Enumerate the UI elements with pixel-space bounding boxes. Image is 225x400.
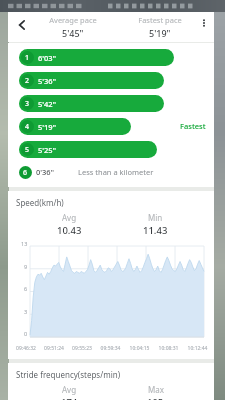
staticText: 09:46:32 bbox=[12, 345, 40, 352]
staticText: 0'36" bbox=[36, 167, 54, 177]
staticText: 6 bbox=[23, 168, 28, 178]
staticText: 6'03" bbox=[38, 53, 56, 63]
staticText: 5'45" bbox=[62, 27, 84, 39]
staticText: 5'36" bbox=[38, 76, 56, 86]
staticText: 4 bbox=[25, 122, 30, 132]
staticText: 6 bbox=[24, 285, 28, 292]
button[interactable]: 2 bbox=[8, 71, 214, 89]
staticText: Max bbox=[148, 384, 164, 395]
staticText: 9 bbox=[24, 263, 28, 270]
staticText: Min bbox=[148, 212, 163, 223]
button[interactable]: Average pace bbox=[30, 15, 116, 39]
staticText: 5'19" bbox=[149, 27, 171, 39]
staticText: 3 bbox=[24, 308, 28, 315]
staticText: 09:51:24 bbox=[40, 345, 68, 352]
staticText: Less than a kilometer bbox=[78, 167, 154, 177]
staticText: Fastest bbox=[180, 121, 206, 131]
staticText: 5'19" bbox=[38, 122, 56, 132]
staticText: 1 bbox=[25, 53, 30, 63]
staticText: 174 bbox=[61, 396, 78, 400]
staticText: 195 bbox=[147, 396, 164, 400]
button[interactable]: 4 bbox=[8, 117, 214, 135]
button[interactable]: 5 bbox=[8, 140, 214, 158]
staticText: 10:08:31 bbox=[154, 345, 183, 352]
staticText: 2 bbox=[25, 76, 30, 86]
staticText: 5 bbox=[25, 145, 30, 155]
staticText: 0 bbox=[24, 330, 28, 337]
button[interactable]: More options bbox=[195, 14, 213, 32]
staticText: Fastest pace bbox=[138, 15, 182, 25]
staticText: 13 bbox=[21, 240, 28, 247]
staticText: 5'42" bbox=[38, 99, 56, 109]
staticText: 5'25" bbox=[38, 145, 56, 155]
button[interactable]: 3 bbox=[8, 94, 214, 112]
staticText: 10:12:44 bbox=[183, 345, 212, 352]
staticText: 11.43 bbox=[143, 224, 168, 237]
button[interactable]: Back bbox=[11, 14, 33, 36]
button[interactable]: 1 bbox=[8, 48, 214, 66]
staticText: 10.43 bbox=[57, 224, 82, 237]
staticText: Average pace bbox=[49, 15, 97, 25]
staticText: Stride frequency(steps/min) bbox=[16, 369, 121, 380]
staticText: 10:04:15 bbox=[125, 345, 154, 352]
button[interactable]: Fastest pace bbox=[120, 15, 200, 39]
staticText: Avg bbox=[62, 384, 77, 395]
staticText: Avg bbox=[62, 212, 77, 223]
button[interactable]: 6 bbox=[8, 163, 214, 181]
staticText: 09:59:34 bbox=[96, 345, 125, 352]
staticText: Speed(km/h) bbox=[16, 197, 64, 208]
staticText: 3 bbox=[25, 99, 30, 109]
staticText: 09:55:23 bbox=[68, 345, 96, 352]
